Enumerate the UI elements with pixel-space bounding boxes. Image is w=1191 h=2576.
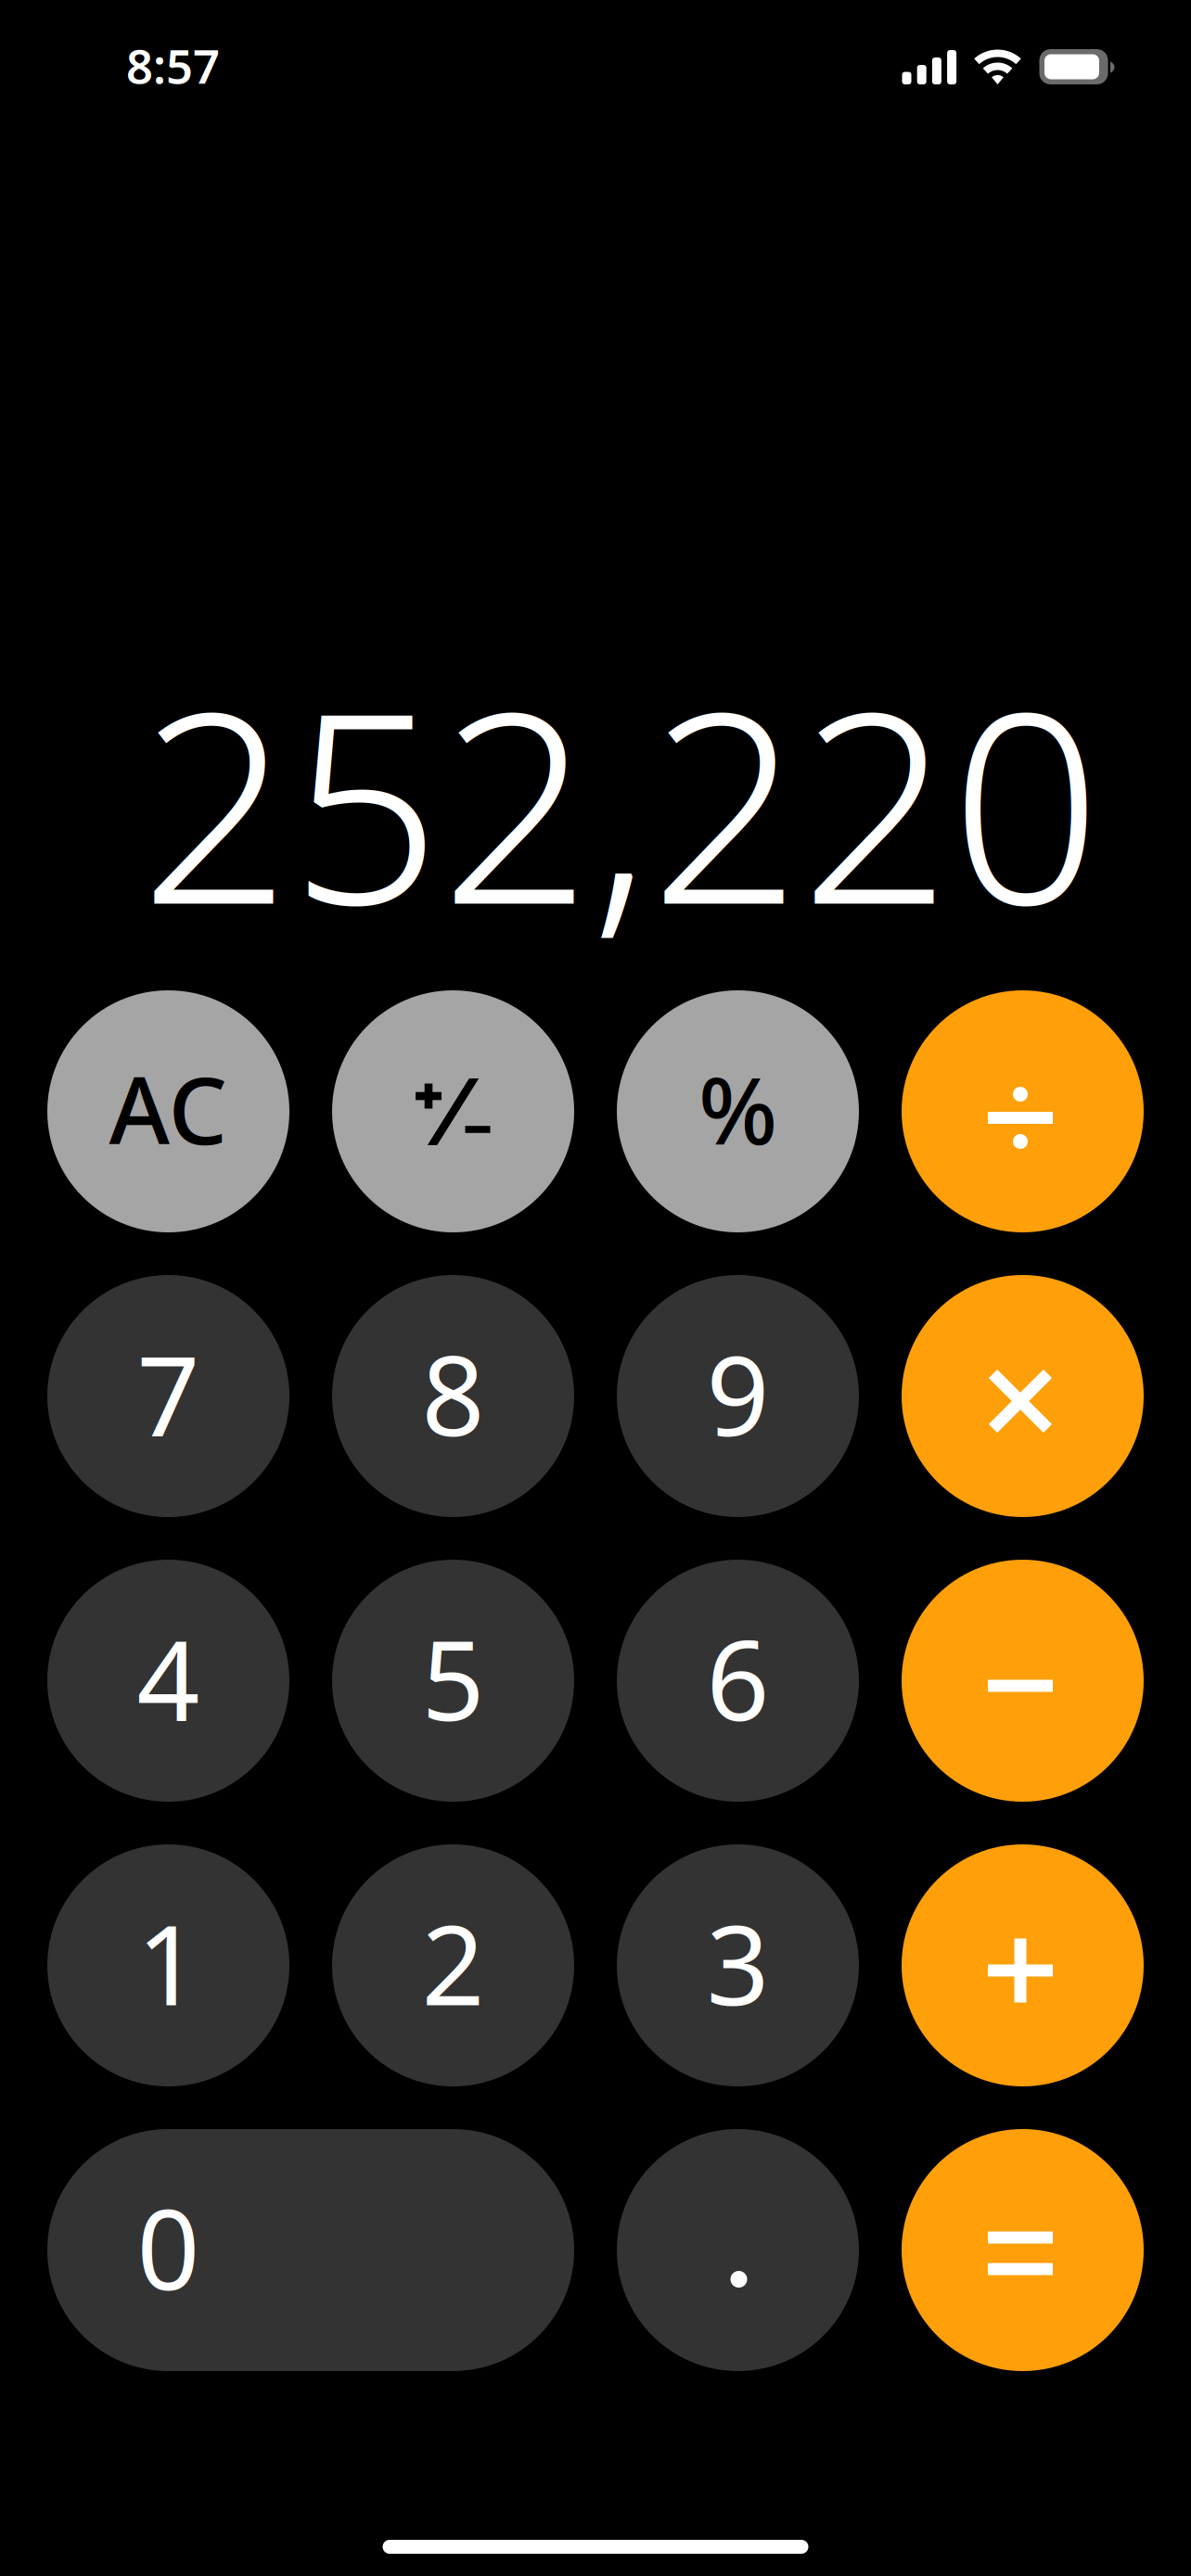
staticText: 7 xyxy=(137,1320,200,1466)
button[interactable]: 8 xyxy=(332,1275,574,1517)
staticText: 8 xyxy=(422,1320,485,1466)
button[interactable]: Decimal point xyxy=(617,2129,859,2371)
button[interactable]: Percent xyxy=(617,990,859,1232)
staticText: AC xyxy=(109,1047,228,1170)
button[interactable]: 1 xyxy=(47,1844,289,2086)
button[interactable]: 0 xyxy=(47,2129,574,2371)
staticText: 1 xyxy=(137,1890,200,2036)
button[interactable]: 4 xyxy=(47,1560,289,1802)
staticText: 4 xyxy=(137,1605,200,1751)
button[interactable]: Minus xyxy=(902,1560,1144,1802)
button[interactable]: 3 xyxy=(617,1844,859,2086)
staticText: 252,220 xyxy=(140,627,1101,976)
staticText: 5 xyxy=(422,1605,485,1751)
staticText: 0 xyxy=(137,2174,200,2320)
button[interactable]: 9 xyxy=(617,1275,859,1517)
staticText: 9 xyxy=(706,1320,769,1466)
button[interactable]: 2 xyxy=(332,1844,574,2086)
button[interactable]: Equals xyxy=(902,2129,1144,2371)
button[interactable]: All clear xyxy=(47,990,289,1232)
button[interactable]: 6 xyxy=(617,1560,859,1802)
button[interactable]: Multiply xyxy=(902,1275,1144,1517)
staticText: % xyxy=(698,1047,777,1170)
button[interactable]: 5 xyxy=(332,1560,574,1802)
button[interactable]: Divide xyxy=(902,990,1144,1232)
staticText: 6 xyxy=(706,1605,769,1751)
staticText: 8:57 xyxy=(126,34,220,97)
button[interactable]: Plus xyxy=(902,1844,1144,2086)
staticText: 3 xyxy=(706,1890,769,2036)
staticText: 2 xyxy=(422,1890,485,2036)
button[interactable]: Plus minus xyxy=(332,990,574,1232)
button[interactable]: 7 xyxy=(47,1275,289,1517)
